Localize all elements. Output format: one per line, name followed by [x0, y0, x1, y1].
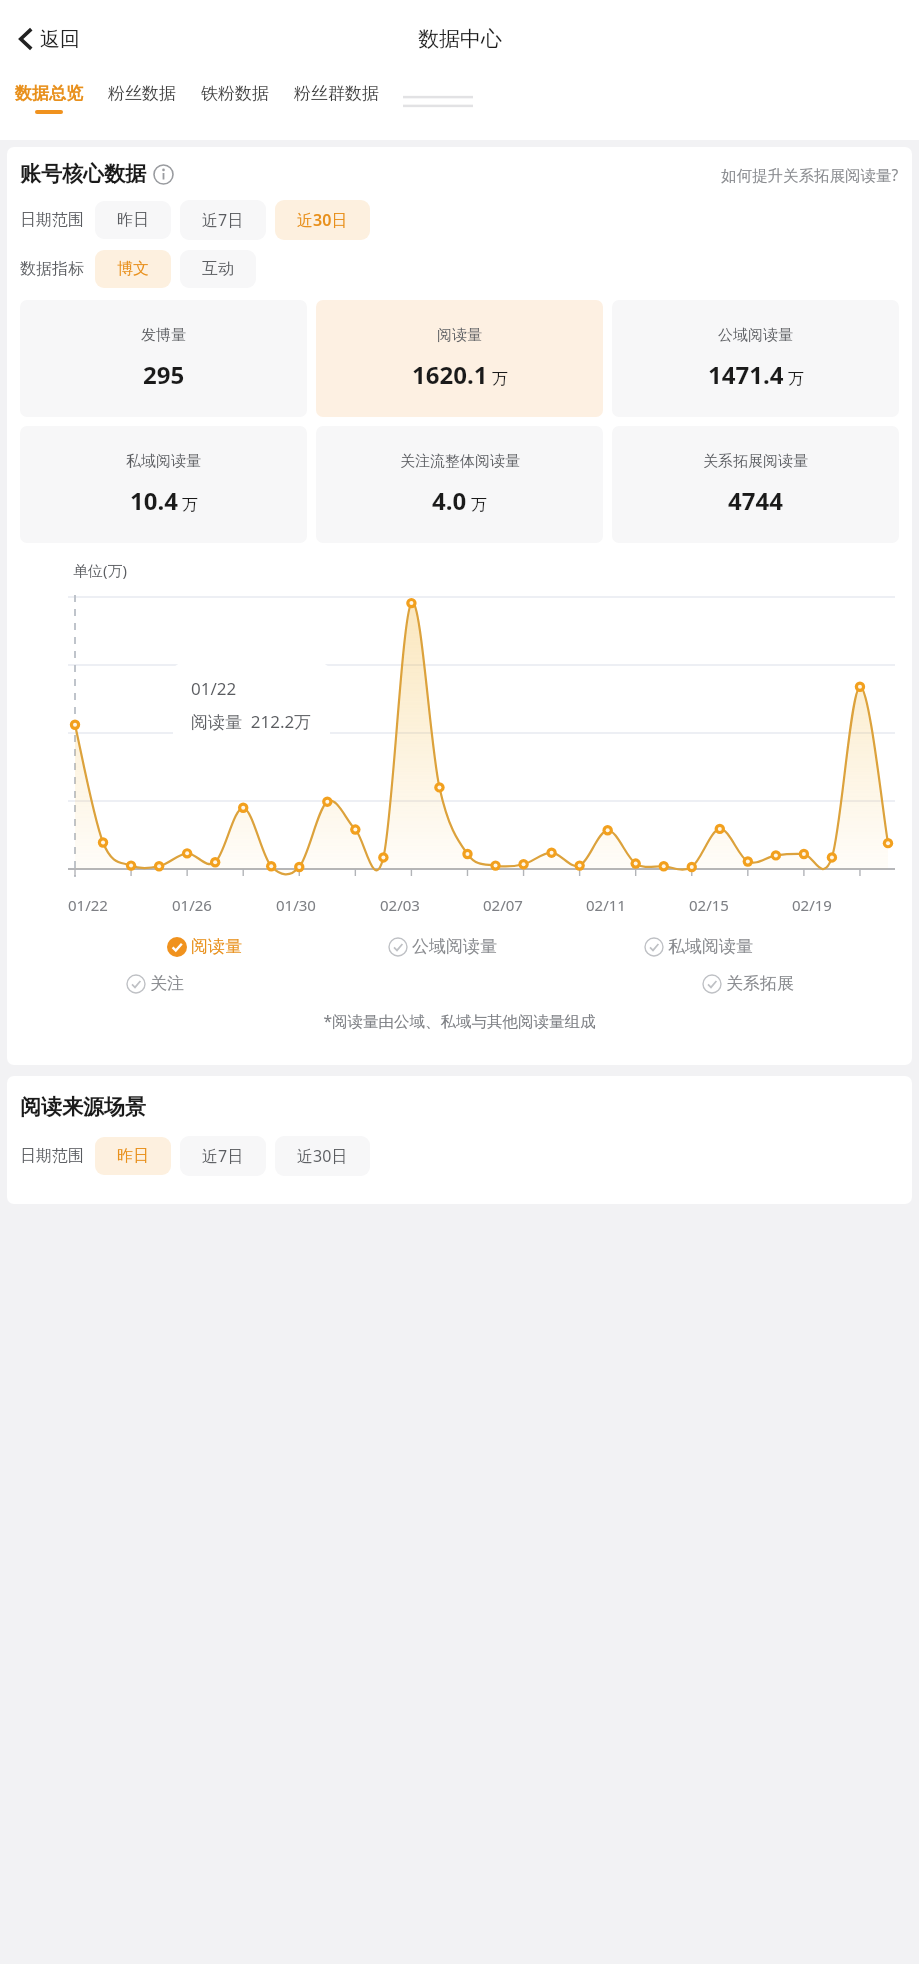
button[interactable]: 昨日 [95, 1137, 171, 1175]
button[interactable]: 私域阅读量 [20, 426, 307, 543]
button[interactable]: 互动 [180, 250, 256, 288]
button[interactable]: 发博量 [20, 300, 307, 417]
staticText: 近7日 [202, 1145, 244, 1167]
button[interactable]: 私域阅读量 [644, 934, 753, 959]
staticText: 万 [471, 495, 487, 515]
button[interactable]: 关注 [126, 971, 184, 996]
button[interactable]: 近30日 [275, 1136, 370, 1176]
staticText: 02/19 [792, 895, 832, 915]
button[interactable]: 如何提升关系拓展阅读量? [721, 164, 899, 185]
button[interactable]: 数据总览 [15, 77, 83, 114]
staticText: 02/15 [689, 895, 729, 915]
staticText: 私域阅读量 [126, 452, 201, 471]
staticText: 日期范围 [20, 210, 84, 230]
button[interactable]: 博文 [95, 250, 171, 288]
button[interactable]: 说明 [153, 164, 174, 185]
button[interactable]: 铁粉数据 [201, 77, 269, 114]
staticText: 粉丝群数据 [294, 83, 379, 104]
button[interactable]: 近30日 [275, 200, 370, 240]
button[interactable]: 粉丝数据 [108, 77, 176, 114]
button[interactable]: 粉丝群数据 [294, 77, 379, 114]
button[interactable]: 阅读量 [167, 934, 242, 959]
staticText: 4.0 [432, 484, 467, 517]
staticText: 关系拓展 [726, 973, 794, 994]
staticText: 4744 [728, 484, 783, 517]
staticText: 近7日 [202, 209, 244, 231]
staticText: 02/03 [380, 895, 420, 915]
staticText: 01/22 [68, 895, 108, 915]
staticText: 01/22 [191, 677, 237, 700]
staticText: 阅读来源场景 [20, 1094, 146, 1120]
staticText: 关注 [150, 973, 184, 994]
staticText: 1471.4 [708, 358, 784, 391]
staticText: 铁粉数据 [201, 83, 269, 104]
staticText: 互动 [202, 259, 234, 279]
staticText: 日期范围 [20, 1146, 84, 1166]
staticText: 1620.1 [412, 358, 488, 391]
staticText: 数据总览 [15, 83, 83, 104]
staticText: 近30日 [297, 209, 348, 231]
staticText: 阅读量 [437, 326, 482, 345]
staticText: 私域阅读量 [668, 936, 753, 957]
button[interactable]: 近7日 [180, 1136, 266, 1176]
staticText: 博文 [117, 259, 149, 279]
staticText: 昨日 [117, 1146, 149, 1166]
staticText: 公域阅读量 [718, 326, 793, 345]
staticText: 数据指标 [20, 259, 84, 279]
staticText: 阅读量 [191, 936, 242, 957]
staticText: 01/30 [276, 895, 316, 915]
staticText: 阅读量 212.2万 [191, 710, 312, 733]
button[interactable]: 昨日 [95, 201, 171, 239]
staticText: *阅读量由公域、私域与其他阅读量组成 [20, 1010, 899, 1031]
button[interactable]: 公域阅读量 [388, 934, 497, 959]
staticText: 数据中心 [418, 26, 502, 52]
staticText: 01/26 [172, 895, 212, 915]
staticText: 关系拓展阅读量 [703, 452, 808, 471]
staticText: 万 [182, 495, 198, 515]
button[interactable]: 关注流整体阅读量 [316, 426, 603, 543]
staticText: 发博量 [141, 326, 186, 345]
staticText: 02/11 [586, 895, 626, 915]
staticText: 02/07 [483, 895, 523, 915]
staticText: 账号核心数据 [20, 161, 146, 187]
button[interactable]: 关系拓展阅读量 [612, 426, 899, 543]
button[interactable]: 公域阅读量 [612, 300, 899, 417]
button[interactable]: 返回 [12, 20, 86, 58]
staticText: 单位(万) [73, 560, 128, 580]
button[interactable]: 关系拓展 [702, 971, 794, 996]
button[interactable]: 阅读量 [316, 300, 603, 417]
button[interactable]: 近7日 [180, 200, 266, 240]
staticText: 公域阅读量 [412, 936, 497, 957]
staticText: 返回 [40, 27, 80, 52]
staticText: 295 [143, 358, 185, 391]
staticText: 昨日 [117, 210, 149, 230]
staticText: 万 [788, 369, 804, 389]
staticText: 粉丝数据 [108, 83, 176, 104]
staticText: 关注流整体阅读量 [400, 452, 520, 471]
staticText: 万 [492, 369, 508, 389]
staticText: 近30日 [297, 1145, 348, 1167]
staticText: 10.4 [130, 484, 178, 517]
